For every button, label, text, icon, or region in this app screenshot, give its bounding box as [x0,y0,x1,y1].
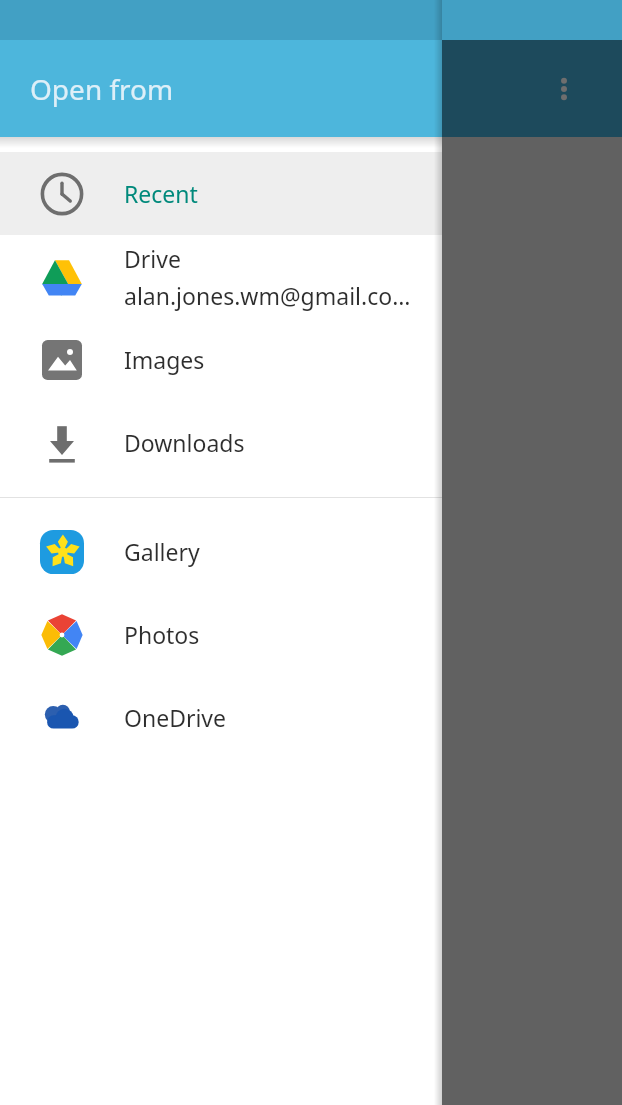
staticText: Recent [124,178,198,209]
staticText: Drive [124,243,181,274]
staticText: Downloads [124,427,245,458]
staticText: Images [124,344,205,375]
button[interactable]: More options [534,59,594,119]
button[interactable]: Downloads [0,401,442,484]
button[interactable]: OneDrive [0,676,442,759]
button[interactable]: Gallery [0,510,442,593]
button[interactable]: Drive [0,235,442,318]
staticText: Open from [30,70,174,108]
button[interactable]: Images [0,318,442,401]
staticText: alan.jones.wm@gmail.co… [124,280,411,311]
button[interactable]: Photos [0,593,442,676]
staticText: Gallery [124,536,200,567]
staticText: Photos [124,619,200,650]
staticText: OneDrive [124,702,227,733]
button[interactable]: Recent [0,152,442,235]
